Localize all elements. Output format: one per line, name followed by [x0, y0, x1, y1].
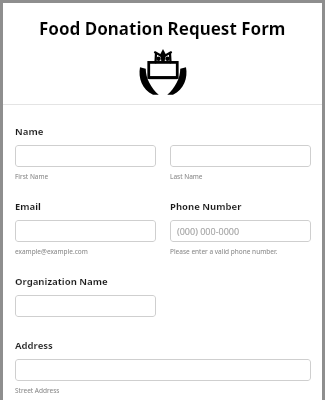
staticText: Name [15, 125, 44, 138]
staticText: (000) 000-0000 [177, 225, 240, 237]
button[interactable] [15, 145, 156, 167]
button[interactable]: (000) 000-0000 [170, 220, 311, 242]
button[interactable] [15, 295, 156, 317]
button[interactable] [15, 359, 311, 381]
other: Food donation [138, 48, 188, 96]
staticText: Last Name [170, 172, 203, 181]
staticText: Street Address [15, 386, 60, 395]
staticText: Food Donation Request Form [39, 17, 286, 40]
staticText: Email [15, 200, 41, 213]
button[interactable] [170, 145, 311, 167]
staticText: example@example.com [15, 247, 88, 256]
staticText: Organization Name [15, 275, 108, 288]
button[interactable] [15, 220, 156, 242]
staticText: First Name [15, 172, 49, 181]
staticText: Please enter a valid phone number. [170, 247, 278, 256]
staticText: Address [15, 339, 53, 352]
staticText: Phone Number [170, 200, 242, 213]
